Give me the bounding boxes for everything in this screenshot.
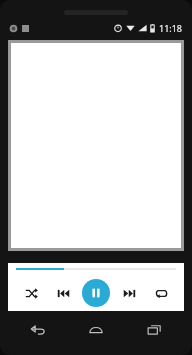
button[interactable]: Pause xyxy=(82,279,110,307)
button[interactable]: Shuffle xyxy=(18,280,44,306)
button[interactable]: Next xyxy=(116,280,142,306)
button[interactable]: Recents xyxy=(134,316,174,342)
staticText: 11:18 xyxy=(159,22,183,34)
button[interactable]: Home xyxy=(76,316,116,342)
button[interactable]: Back xyxy=(18,316,58,342)
button[interactable]: Previous xyxy=(50,280,76,306)
button[interactable]: Repeat xyxy=(148,280,174,306)
